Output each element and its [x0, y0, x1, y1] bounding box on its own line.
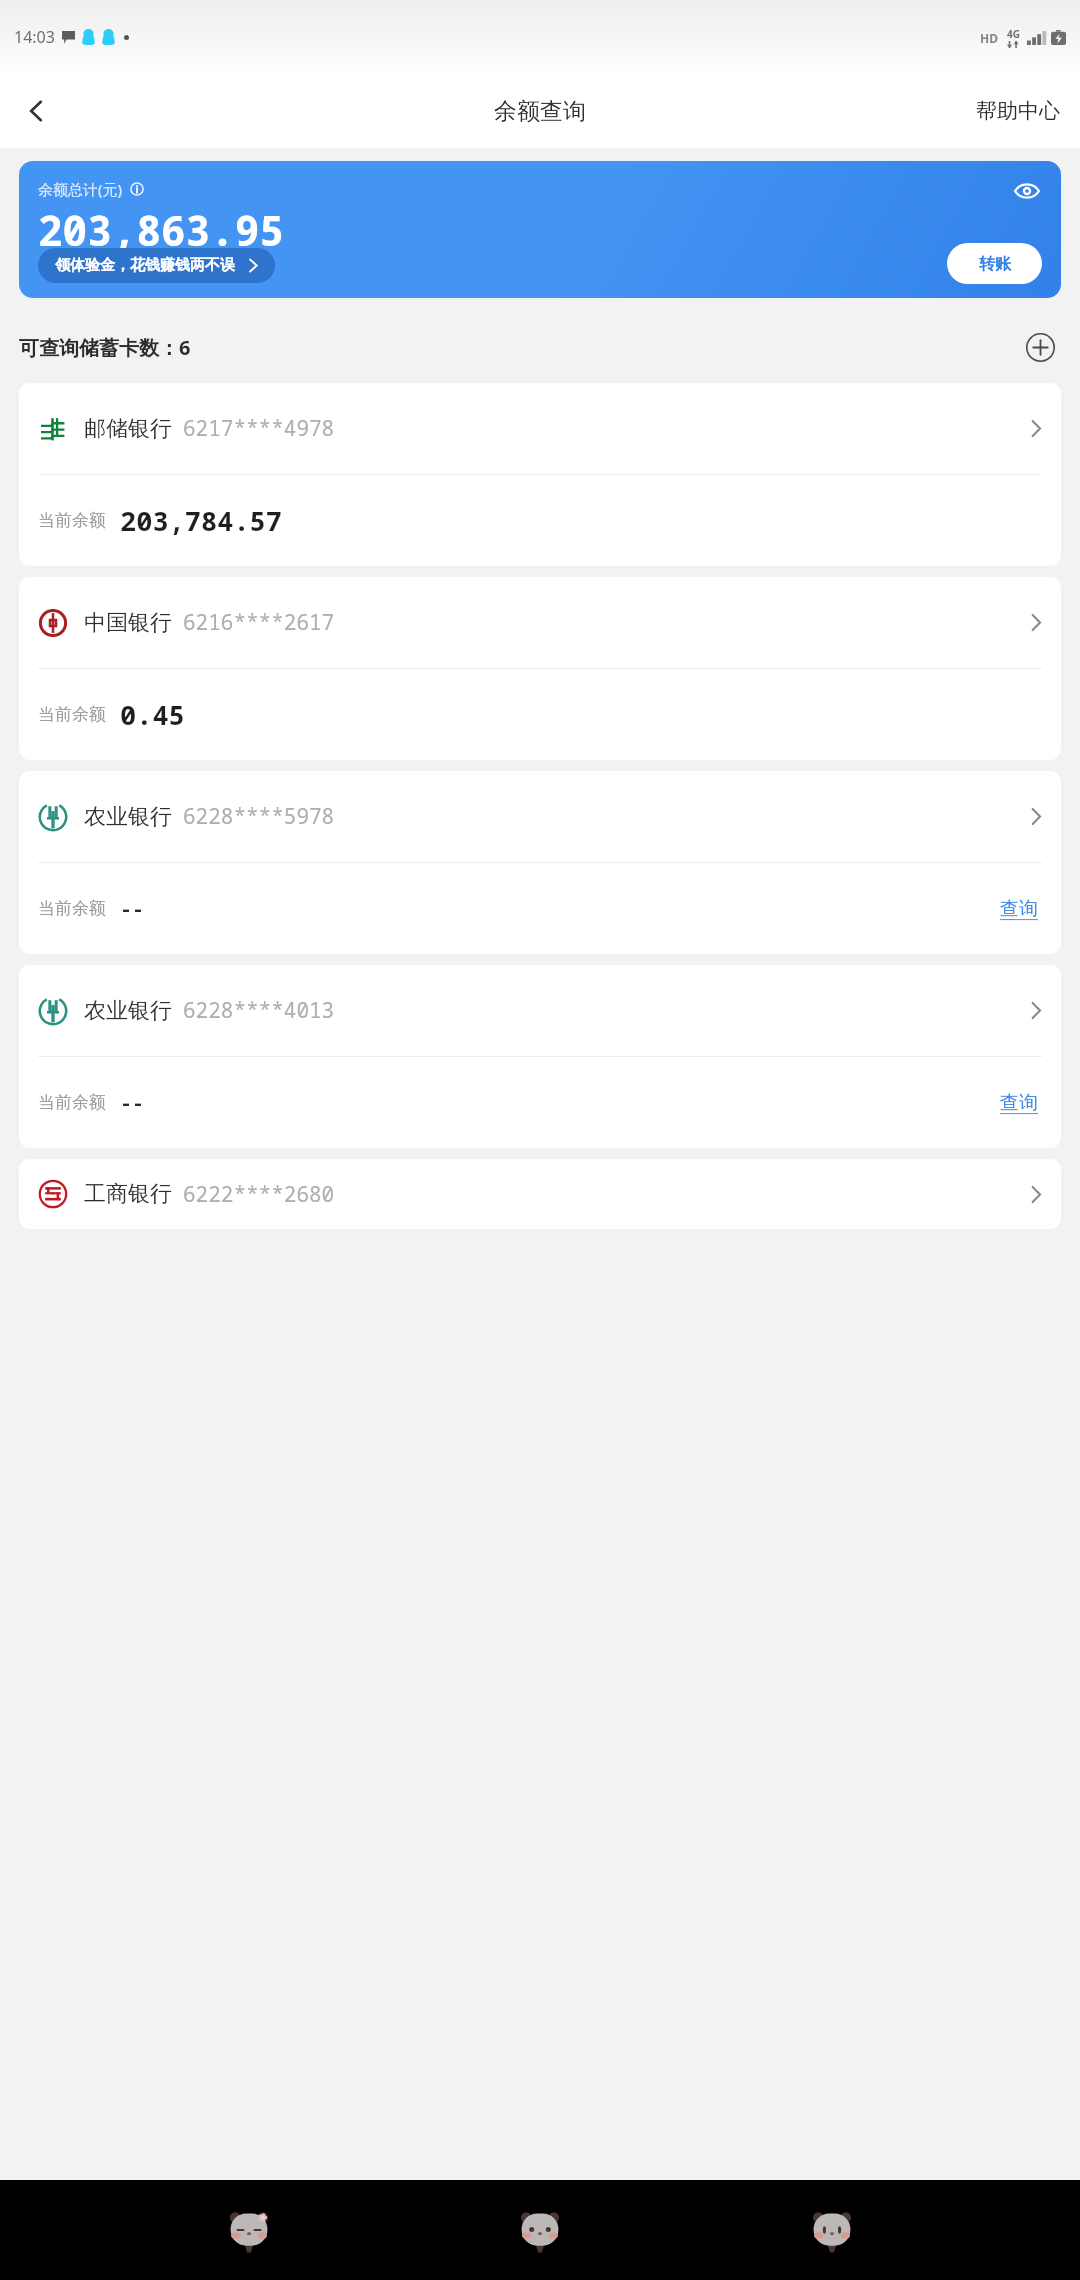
button[interactable]: 农业银行 [19, 771, 1061, 954]
staticText: 4G [1007, 27, 1020, 41]
staticText: 农业银行 [84, 997, 172, 1025]
staticText: 余额总计(元) [38, 179, 123, 199]
button[interactable]: 转账 [947, 243, 1042, 284]
staticText: 6216****2617 [183, 608, 335, 637]
staticText: 当前余额 [38, 898, 106, 919]
staticText: 帮助中心 [976, 98, 1060, 124]
button[interactable]: 显示或隐藏余额 [1007, 171, 1047, 211]
staticText: 邮储银行 [84, 415, 172, 443]
staticText: 农业银行 [84, 803, 172, 831]
staticText: 203,784.57 [120, 502, 282, 539]
staticText: 0.45 [120, 696, 185, 733]
staticText: 余额查询 [494, 97, 586, 126]
staticText: 当前余额 [38, 704, 106, 725]
staticText: 查询 [1000, 1091, 1038, 1115]
button[interactable]: 工商银行 [19, 1159, 1061, 1229]
button[interactable]: 中国银行 [19, 577, 1061, 760]
button[interactable]: 主页 [497, 2187, 583, 2273]
staticText: 203,863.95 [38, 202, 284, 258]
button[interactable]: 领体验金，花钱赚钱两不误 [38, 248, 275, 283]
staticText: 转账 [979, 254, 1011, 274]
button[interactable]: 最近任务 [206, 2187, 292, 2273]
staticText: 当前余额 [38, 1092, 106, 1113]
button[interactable]: 农业银行 [19, 965, 1061, 1148]
staticText: -- [120, 1089, 144, 1116]
button[interactable]: 查询 [996, 1083, 1042, 1123]
staticText: 6228****5978 [183, 802, 335, 831]
staticText: 查询 [1000, 897, 1038, 921]
staticText: 中国银行 [84, 609, 172, 637]
staticText: 14:03 [14, 26, 55, 48]
staticText: 6217****4978 [183, 414, 335, 443]
staticText: 6222****2680 [183, 1180, 335, 1209]
staticText: HD [980, 30, 998, 46]
staticText: 当前余额 [38, 510, 106, 531]
staticText: 工商银行 [84, 1180, 172, 1208]
button[interactable]: 帮助中心 [970, 88, 1066, 134]
button[interactable]: 返回 [789, 2187, 875, 2273]
button[interactable]: 添加银行卡 [1019, 326, 1061, 368]
button[interactable]: 邮储银行 [19, 383, 1061, 566]
staticText: 可查询储蓄卡数：6 [19, 334, 191, 361]
staticText: -- [120, 895, 144, 922]
button[interactable]: 返回 [8, 83, 64, 139]
button[interactable]: 查询 [996, 889, 1042, 929]
button[interactable]: 余额总计(元) [19, 161, 1061, 298]
staticText: 领体验金，花钱赚钱两不误 [55, 256, 235, 275]
staticText: 6228****4013 [183, 996, 335, 1025]
